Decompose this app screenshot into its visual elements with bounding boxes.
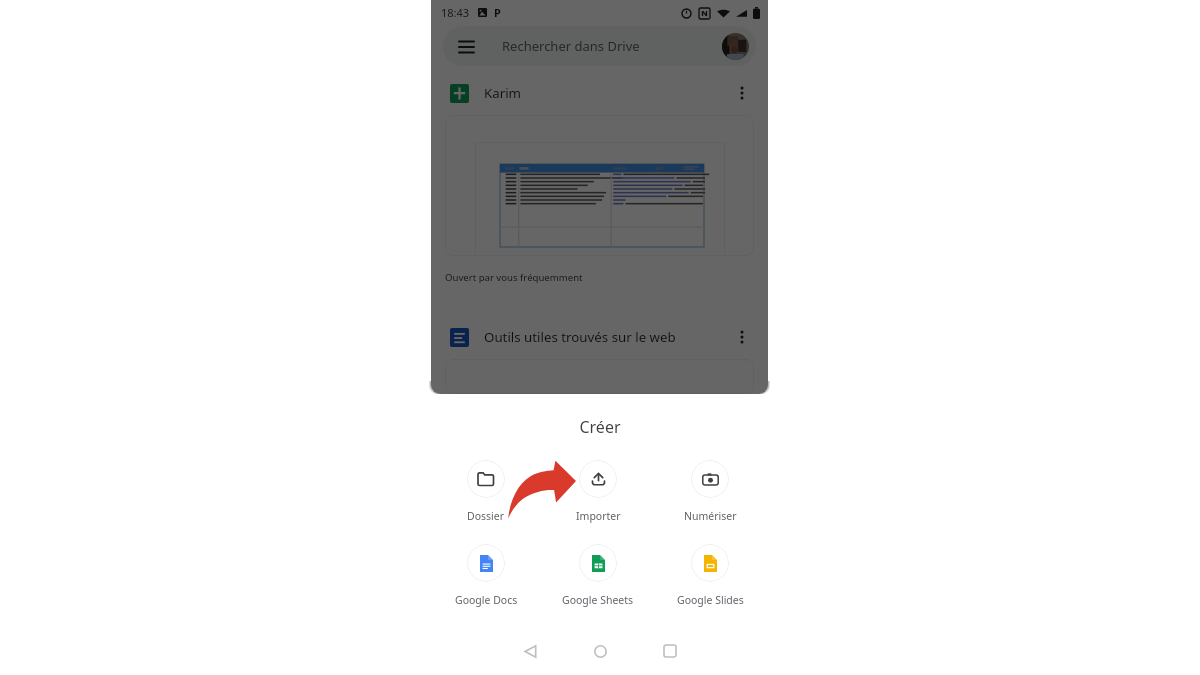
button[interactable]: Open navigation menu (443, 26, 756, 66)
staticText: Google Docs (455, 593, 518, 607)
button[interactable]: Account (722, 33, 749, 60)
button[interactable]: More options (732, 83, 752, 103)
staticText: Importer (576, 509, 621, 523)
button[interactable]: Outils utiles trouvés sur le web (450, 315, 752, 359)
button[interactable]: Recent apps (646, 628, 694, 674)
button[interactable]: Karim (450, 71, 752, 115)
button[interactable]: Home (576, 628, 624, 674)
staticText: Ouvert par vous fréquemment (445, 271, 583, 284)
button[interactable]: Google Sheets (542, 544, 654, 607)
button[interactable]: Google Slides (654, 544, 766, 607)
staticText: Rechercher dans Drive (502, 37, 640, 55)
staticText: Karim (484, 84, 522, 102)
staticText: Google Sheets (562, 593, 634, 607)
staticText: Outils utiles trouvés sur le web (484, 328, 676, 346)
button[interactable]: Dossier (430, 460, 542, 523)
staticText: P (494, 5, 501, 20)
button[interactable]: Google Docs (430, 544, 542, 607)
staticText: Numériser (684, 509, 737, 523)
button[interactable]: Back (506, 628, 554, 674)
button[interactable]: Importer (542, 460, 654, 523)
button[interactable]: More options (732, 327, 752, 347)
staticText: 18:43 (441, 5, 470, 20)
button[interactable]: Numériser (654, 460, 766, 523)
staticText: Créer (0, 416, 1200, 438)
button[interactable]: Open navigation menu (458, 40, 475, 53)
staticText: Google Slides (677, 593, 744, 607)
staticText: Dossier (467, 509, 505, 523)
